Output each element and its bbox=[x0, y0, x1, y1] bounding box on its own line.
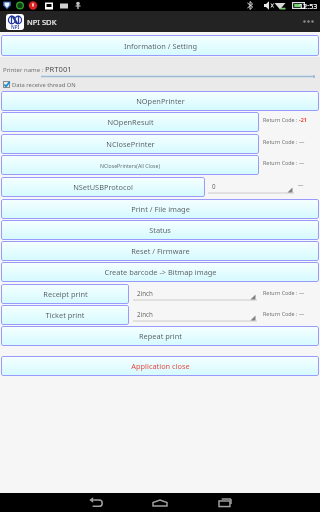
staticText: Return Code : bbox=[263, 289, 299, 296]
staticText: Data receive thread ON bbox=[12, 81, 76, 89]
button[interactable]: Print / File image bbox=[1, 199, 319, 219]
button[interactable]: Application close bbox=[1, 356, 319, 376]
button[interactable]: Repeat print bbox=[1, 326, 319, 346]
button[interactable]: Home bbox=[139, 493, 181, 512]
staticText: NPI bbox=[11, 24, 20, 30]
button[interactable]: NOpenPrinter bbox=[1, 91, 319, 111]
button[interactable]: Recent apps bbox=[204, 493, 246, 512]
staticText: Return Code : bbox=[263, 138, 299, 145]
staticText: 2inch bbox=[137, 289, 153, 297]
staticText: — bbox=[299, 138, 305, 145]
staticText: PRT001 bbox=[45, 64, 72, 74]
staticText: Receipt print bbox=[43, 289, 88, 299]
staticText: Status bbox=[149, 225, 171, 235]
staticText: Print / File image bbox=[131, 204, 190, 214]
staticText: — bbox=[299, 289, 305, 296]
button[interactable]: NOpenResult bbox=[1, 112, 259, 132]
staticText: Information / Setting bbox=[124, 41, 197, 51]
staticText: Repeat print bbox=[139, 331, 182, 341]
button[interactable]: 0 bbox=[208, 178, 294, 194]
button[interactable]: More options bbox=[297, 15, 320, 28]
staticText: Ticket print bbox=[45, 310, 85, 320]
button[interactable]: Information / Setting bbox=[1, 35, 319, 56]
button[interactable]: NSetUSBProtocol bbox=[1, 177, 205, 197]
button[interactable]: NClosePrinter bbox=[1, 134, 259, 154]
button[interactable]: Status bbox=[1, 220, 319, 240]
staticText: NSetUSBProtocol bbox=[73, 182, 133, 192]
staticText: Return Code : bbox=[263, 310, 299, 317]
button[interactable]: 2inch bbox=[133, 285, 257, 301]
button[interactable]: NClosePrinters(All Close) bbox=[1, 155, 259, 175]
staticText: 12:53 bbox=[299, 1, 318, 11]
button[interactable]: Ticket print bbox=[1, 305, 129, 325]
staticText: Return Code : bbox=[263, 116, 299, 123]
button[interactable]: Data receive thread ON bbox=[3, 80, 76, 89]
staticText: — bbox=[299, 310, 305, 317]
staticText: -21 bbox=[299, 116, 307, 123]
staticText: — bbox=[299, 159, 305, 166]
staticText: NPI SDK bbox=[27, 17, 57, 27]
staticText: Printer name : bbox=[3, 66, 44, 74]
button[interactable]: Back bbox=[75, 493, 117, 512]
staticText: 0 bbox=[212, 182, 216, 190]
staticText: NOpenResult bbox=[107, 117, 154, 127]
staticText: Create barcode -> Bitmap image bbox=[104, 267, 217, 277]
button[interactable]: Receipt print bbox=[1, 284, 129, 304]
staticText: NOpenPrinter bbox=[136, 96, 185, 106]
button[interactable]: Reset / Firmware bbox=[1, 241, 319, 261]
staticText: 2inch bbox=[137, 310, 153, 318]
button[interactable]: Create barcode -> Bitmap image bbox=[1, 262, 319, 282]
staticText: NClosePrinters(All Close) bbox=[100, 162, 160, 169]
staticText: Reset / Firmware bbox=[131, 246, 190, 256]
button[interactable]: 2inch bbox=[133, 306, 257, 322]
staticText: Application close bbox=[131, 361, 190, 371]
staticText: NClosePrinter bbox=[106, 139, 155, 149]
staticText: Return Code : bbox=[263, 159, 299, 166]
staticText: — bbox=[298, 181, 304, 188]
